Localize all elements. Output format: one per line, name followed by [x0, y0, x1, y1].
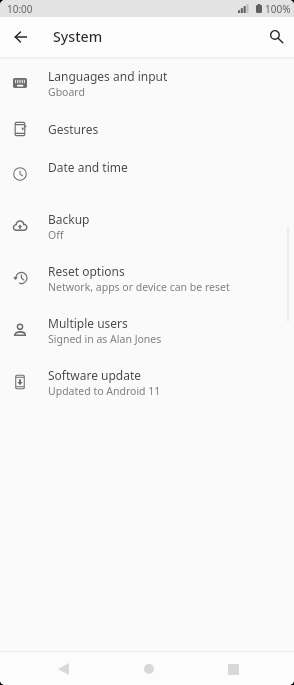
- button[interactable]: Back: [6, 22, 35, 51]
- button[interactable]: Home: [134, 654, 164, 684]
- button[interactable]: Reset options: [0, 252, 294, 304]
- button[interactable]: Software update: [0, 356, 294, 408]
- button[interactable]: Gestures: [0, 110, 294, 148]
- button[interactable]: Languages and input: [0, 56, 294, 110]
- staticText: 10:00: [7, 2, 33, 16]
- staticText: Gestures: [48, 121, 99, 137]
- staticText: Signed in as Alan Jones: [48, 332, 162, 346]
- staticText: Backup: [48, 211, 90, 227]
- staticText: Off: [48, 228, 64, 242]
- staticText: Updated to Android 11: [48, 384, 161, 398]
- button[interactable]: Date and time: [0, 148, 294, 200]
- button[interactable]: Search: [262, 22, 291, 51]
- button[interactable]: Backup: [0, 200, 294, 252]
- button[interactable]: Back: [48, 654, 78, 684]
- staticText: Gboard: [48, 85, 85, 99]
- staticText: Multiple users: [48, 315, 128, 331]
- button[interactable]: Multiple users: [0, 304, 294, 356]
- staticText: System: [53, 27, 103, 46]
- button[interactable]: Recent apps: [218, 654, 248, 684]
- staticText: Languages and input: [48, 68, 168, 84]
- staticText: Software update: [48, 367, 142, 383]
- staticText: 100%: [265, 2, 291, 16]
- staticText: Network, apps or device can be reset: [48, 280, 230, 294]
- staticText: Reset options: [48, 263, 125, 279]
- staticText: Date and time: [48, 159, 128, 175]
